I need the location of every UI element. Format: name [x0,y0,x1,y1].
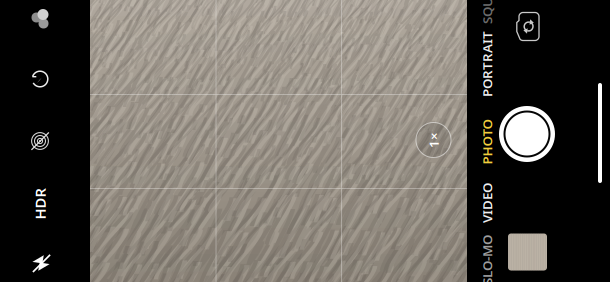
button[interactable]: SQUARE [461,0,513,7]
button[interactable]: VIDEO [467,194,507,212]
button[interactable]: PORTRAIT [454,55,520,73]
button[interactable]: Take Photo [499,106,555,162]
staticText: SLO-MO [462,251,512,269]
button[interactable]: Filters [27,3,53,31]
button[interactable]: Flash Off [30,252,52,274]
staticText: SQUARE [461,0,513,7]
staticText: PHOTO [464,133,509,151]
staticText: VIDEO [467,194,507,212]
staticText: HDR [24,194,55,214]
button[interactable]: Live Photo Off [29,130,51,152]
staticText: PORTRAIT [454,55,520,73]
button[interactable]: Switch Camera [515,11,543,42]
button[interactable]: SLO-MO [462,251,512,269]
button[interactable]: PHOTO [464,133,509,151]
button[interactable]: Timer [29,68,51,90]
button[interactable]: HDR [24,194,55,214]
staticText: 1× [425,131,441,149]
button[interactable]: 1× Zoom [415,122,451,158]
button[interactable]: Photo Library [508,233,547,270]
